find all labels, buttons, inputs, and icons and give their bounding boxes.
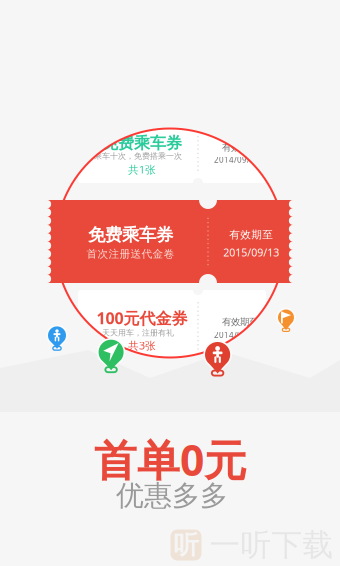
staticText: 乘车十次，免费搭乘一次 (94, 151, 182, 161)
staticText: 100元代金券 (96, 307, 187, 329)
staticText: 一听下载 (209, 526, 333, 564)
staticText: 2014/09/13 (214, 330, 260, 340)
staticText: 有效期至 (222, 142, 258, 153)
staticText: 共3张 (128, 338, 156, 352)
staticText: 首次注册送代金卷 (87, 247, 175, 260)
staticText: 2015/09/13 (223, 245, 279, 259)
staticText: 共1张 (128, 162, 156, 176)
staticText: 有效期至 (229, 228, 273, 241)
staticText: 有效期至 (222, 316, 258, 328)
staticText: 2014/09/13 (214, 154, 260, 165)
staticText: 优惠多多 (116, 478, 228, 513)
staticText: 天天用车，注册有礼 (102, 328, 174, 338)
staticText: 首单0元 (94, 431, 247, 488)
staticText: 免费乘车券 (88, 224, 173, 246)
staticText: 听 (173, 529, 198, 560)
staticText: 免费乘车券 (102, 133, 182, 153)
